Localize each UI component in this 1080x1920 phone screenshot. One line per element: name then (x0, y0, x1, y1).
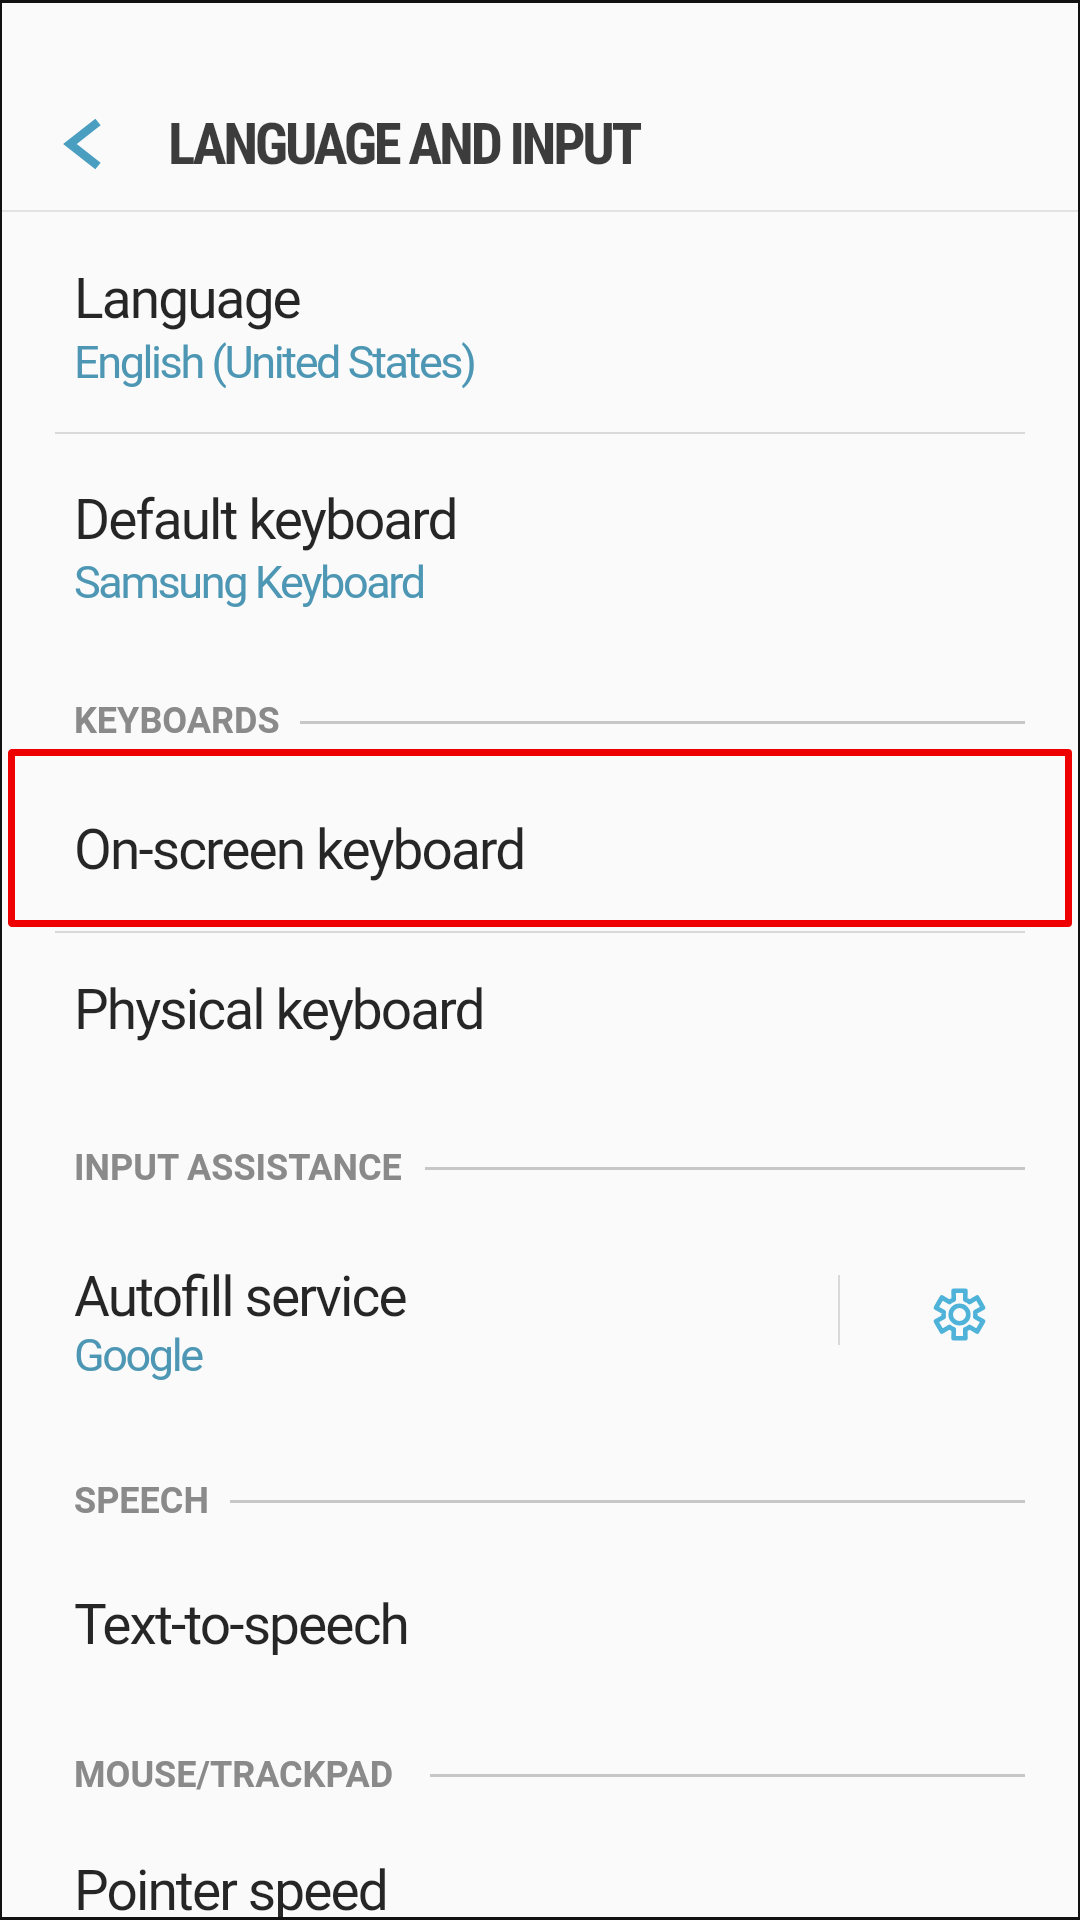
staticText: INPUT ASSISTANCE (74, 1147, 402, 1189)
staticText: Samsung Keyboard (74, 556, 424, 609)
button[interactable]: Default keyboard (0, 434, 1080, 649)
button[interactable]: Pointer speed (0, 1830, 1080, 1920)
button[interactable]: Language (0, 240, 1080, 432)
staticText: MOUSE/TRACKPAD (74, 1754, 394, 1796)
staticText: Physical keyboard (74, 978, 484, 1042)
staticText: English (United States) (74, 336, 475, 389)
button[interactable] (899, 1254, 1019, 1374)
button[interactable]: On-screen keyboard (0, 758, 1080, 920)
staticText: Default keyboard (74, 488, 457, 552)
staticText: LANGUAGE AND INPUT (168, 111, 640, 178)
staticText: KEYBOARDS (74, 700, 280, 742)
staticText: Google (74, 1329, 202, 1382)
button[interactable]: Autofill service (0, 1240, 838, 1400)
staticText: Autofill service (74, 1265, 406, 1329)
staticText: On-screen keyboard (74, 818, 525, 882)
button[interactable]: Text-to-speech (0, 1560, 1080, 1700)
staticText: Language (74, 267, 300, 331)
staticText: Text-to-speech (74, 1593, 408, 1657)
staticText: SPEECH (74, 1480, 209, 1522)
button[interactable] (40, 104, 124, 184)
button[interactable]: Physical keyboard (0, 940, 1080, 1085)
staticText: Pointer speed (74, 1859, 387, 1920)
